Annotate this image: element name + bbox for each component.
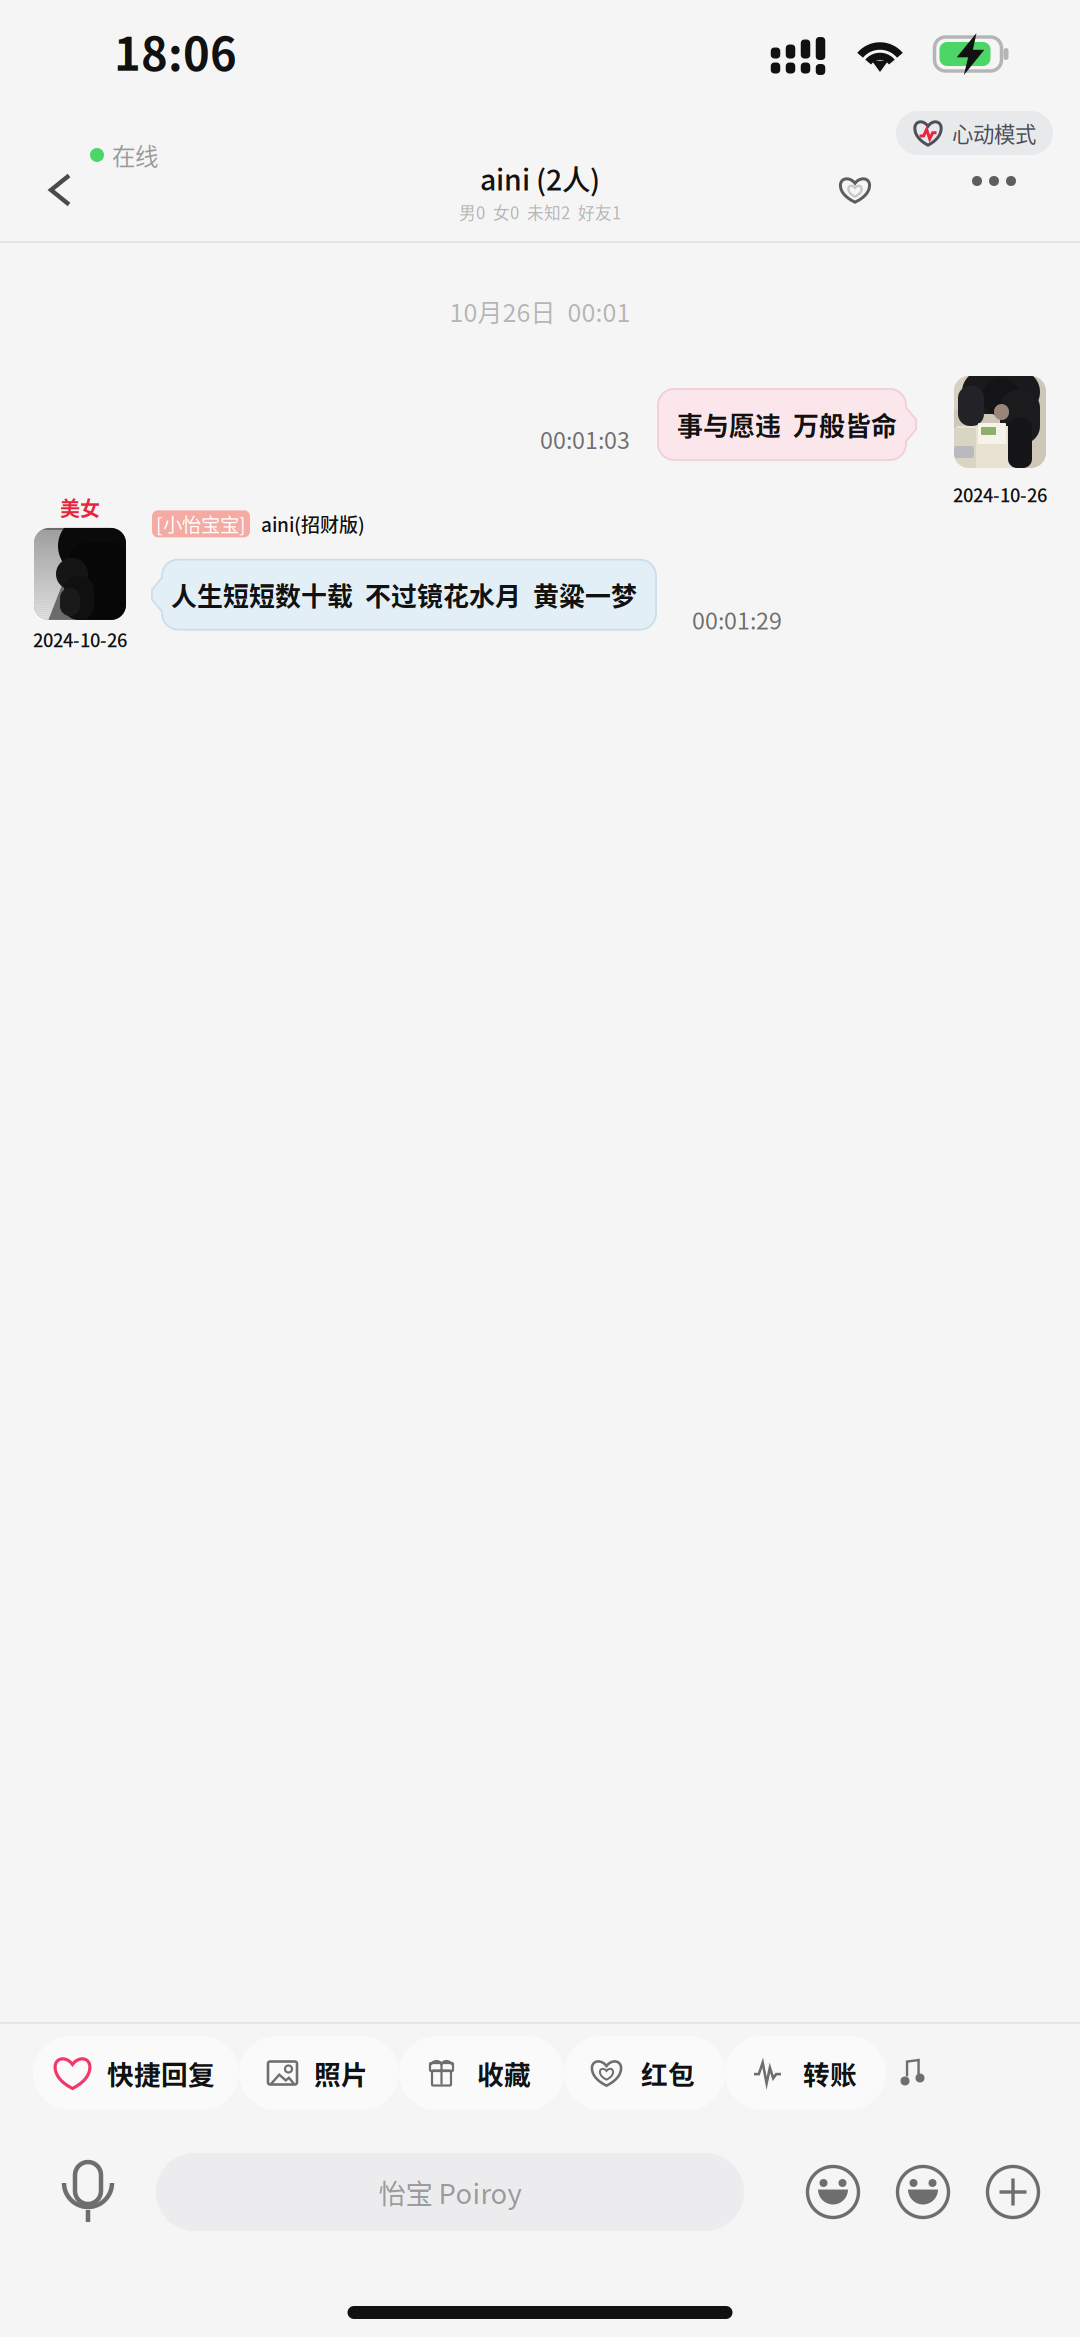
button[interactable]: More bbox=[946, 141, 1042, 221]
staticText: 18:06 bbox=[114, 18, 237, 84]
button[interactable]: Music bbox=[886, 2033, 936, 2113]
button[interactable]: 心动模式 bbox=[896, 111, 1053, 155]
button[interactable]: 怡宝 Poiroy bbox=[156, 2153, 744, 2231]
staticText: 转账 bbox=[803, 2054, 857, 2092]
staticText: 00:01:29 bbox=[692, 603, 782, 636]
staticText: [小怡宝宝] bbox=[156, 510, 246, 538]
button[interactable]: 红包 bbox=[564, 2036, 725, 2110]
button[interactable]: Stickers bbox=[878, 2147, 968, 2237]
button[interactable]: 照片 bbox=[239, 2036, 399, 2110]
staticText: 事与愿违 万般皆命 bbox=[677, 406, 897, 443]
staticText: 心动模式 bbox=[952, 118, 1036, 148]
staticText: 男0 女0 未知2 好友1 bbox=[459, 200, 621, 224]
staticText: aini(招财版) bbox=[261, 510, 365, 538]
staticText: 在线 bbox=[112, 138, 158, 172]
staticText: 照片 bbox=[314, 2054, 368, 2092]
button[interactable]: 快捷回复 bbox=[33, 2036, 239, 2110]
button[interactable]: Emoji bbox=[788, 2147, 878, 2237]
button[interactable]: Favourite bbox=[815, 150, 895, 230]
staticText: 收藏 bbox=[477, 2054, 531, 2092]
button[interactable]: Back bbox=[20, 150, 100, 230]
button[interactable]: Voice message bbox=[40, 2144, 136, 2240]
staticText: aini (2人) bbox=[480, 157, 600, 198]
button[interactable]: 转账 bbox=[725, 2036, 886, 2110]
staticText: 人生短短数十载 不过镜花水月 黄粱一梦 bbox=[171, 576, 637, 613]
staticText: 怡宝 Poiroy bbox=[378, 2172, 521, 2212]
staticText: 红包 bbox=[641, 2054, 695, 2092]
staticText: 2024-10-26 bbox=[33, 626, 127, 652]
button[interactable]: More bbox=[968, 2147, 1058, 2237]
staticText: 10月26日 00:01 bbox=[449, 293, 630, 329]
staticText: 2024-10-26 bbox=[953, 481, 1047, 507]
button[interactable]: 收藏 bbox=[399, 2036, 564, 2110]
staticText: 美女 bbox=[60, 493, 100, 522]
staticText: 00:01:03 bbox=[540, 422, 630, 456]
staticText: 快捷回复 bbox=[107, 2054, 215, 2092]
